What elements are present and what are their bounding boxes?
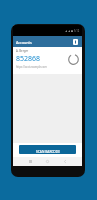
staticText: 852868 [16,54,41,64]
staticText: 5:12 [74,29,80,33]
staticText: SCAN BARCODE [36,150,60,154]
button[interactable]: Recents [27,158,34,165]
button[interactable]: Help [71,37,80,46]
button[interactable]: A. Berger [13,47,82,74]
staticText: https://acct.example.com [16,65,47,69]
button[interactable]: Home [44,158,51,165]
staticText: A. Berger [16,49,29,53]
button[interactable]: SCAN BARCODE [19,145,76,154]
staticText: Accounts [16,40,32,45]
button[interactable]: Back [61,158,68,165]
